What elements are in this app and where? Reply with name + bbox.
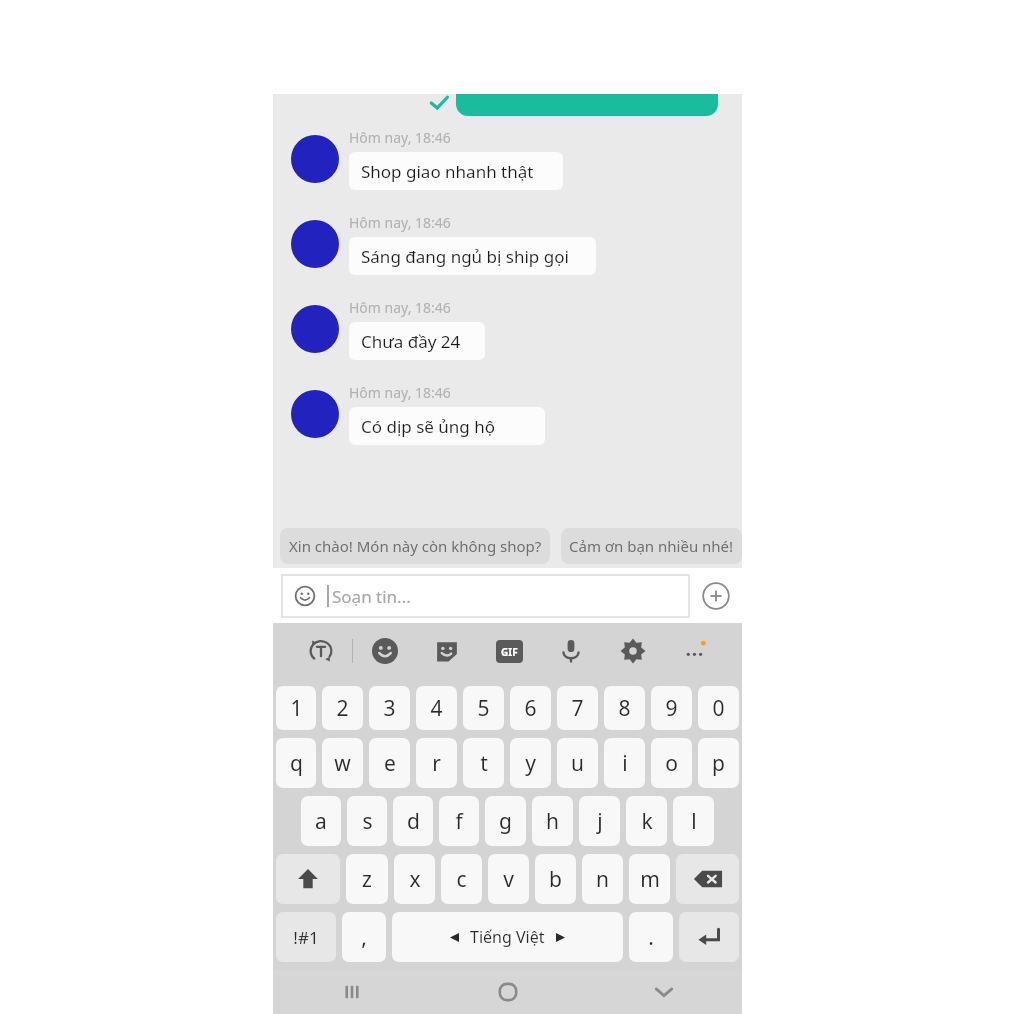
button[interactable]: g [485,796,526,846]
button[interactable]: Emoji [282,575,689,617]
button[interactable]: o [651,738,692,788]
button[interactable]: Voice input [540,623,602,679]
button[interactable]: c [441,854,482,904]
button[interactable]: 7 [557,686,598,730]
staticText: Xin chào! Món này còn không shop? [289,536,542,556]
button[interactable]: 4 [416,686,457,730]
staticText: s [362,807,373,836]
staticText: 4 [430,694,443,723]
staticText: a [315,807,327,836]
button[interactable]: Chưa đầy 24 giờ [349,322,485,360]
button[interactable]: Add attachment [699,579,733,613]
button[interactable]: 9 [651,686,692,730]
staticText: Hôm nay, 18:46 [349,213,451,232]
staticText: , [361,923,367,952]
staticText: q [290,749,303,778]
button[interactable]: 5 [463,686,504,730]
button[interactable]: Translate [289,623,352,679]
staticText: p [712,749,725,778]
staticText: t [480,749,488,778]
button[interactable]: Hide keyboard [586,970,742,1014]
button[interactable]: Emoji [353,623,416,679]
staticText: o [665,749,678,778]
staticText: 9 [665,694,678,723]
staticText: Shop giao nhanh thật đấy [361,160,551,183]
button[interactable]: 0 [698,686,739,730]
staticText: z [362,865,372,894]
button[interactable]: 8 [604,686,645,730]
button[interactable]: GIF [478,623,540,679]
button[interactable]: f [439,796,479,846]
button[interactable]: Recents [273,970,430,1014]
staticText: f [455,807,463,836]
button[interactable]: t [463,738,504,788]
button[interactable] [456,94,718,116]
button[interactable] [291,305,339,353]
button[interactable]: . [629,912,673,962]
button[interactable]: !#1 [276,912,336,962]
button[interactable] [291,220,339,268]
button[interactable]: j [579,796,620,846]
button[interactable] [291,135,339,183]
button[interactable]: Keyboard settings [602,623,664,679]
button[interactable]: 6 [510,686,551,730]
button[interactable]: e [369,738,410,788]
staticText: h [546,807,559,836]
staticText: GIF [501,645,518,659]
staticText: 3 [383,694,396,723]
button[interactable]: 1 [276,686,316,730]
button[interactable]: k [626,796,667,846]
button[interactable]: n [582,854,623,904]
staticText: 5 [477,694,490,723]
button[interactable]: v [488,854,529,904]
button[interactable]: 3 [369,686,410,730]
staticText: r [432,749,441,778]
button[interactable]: Enter [679,912,739,962]
button[interactable]: s [347,796,387,846]
button[interactable]: p [698,738,739,788]
staticText: 6 [524,694,537,723]
button[interactable]: a [301,796,341,846]
button[interactable]: Emoji [292,583,318,609]
button[interactable]: z [346,854,388,904]
button[interactable]: Cảm ơn bạn nhiều nhé! [561,528,742,564]
staticText: e [384,749,396,778]
button[interactable]: Shift [276,854,340,904]
staticText: g [499,807,512,836]
button[interactable]: Tiếng Việt [392,912,623,962]
button[interactable]: m [629,854,670,904]
button[interactable]: l [673,796,714,846]
button[interactable] [291,390,339,438]
staticText: . [648,923,654,952]
staticText: !#1 [293,926,319,949]
button[interactable]: Shop giao nhanh thật đấy [349,152,563,190]
button[interactable]: Sáng đang ngủ bị ship gọi dậy [349,237,596,275]
button[interactable]: i [604,738,645,788]
button[interactable]: Home [430,970,586,1014]
button[interactable]: b [535,854,576,904]
button[interactable]: y [510,738,551,788]
staticText: Hôm nay, 18:46 [349,383,451,402]
button[interactable]: Backspace [676,854,739,904]
button[interactable]: r [416,738,457,788]
staticText: Soạn tin... [332,585,411,608]
button[interactable]: Xin chào! Món này còn không shop? [280,528,550,564]
button[interactable]: d [393,796,433,846]
button[interactable]: Stickers [416,623,478,679]
button[interactable]: h [532,796,573,846]
button[interactable]: u [557,738,598,788]
button[interactable]: 2 [322,686,363,730]
button[interactable]: , [342,912,386,962]
staticText: 2 [336,694,349,723]
button[interactable]: q [276,738,316,788]
staticText: v [503,865,514,894]
staticText: 1 [290,694,303,723]
staticText: Sáng đang ngủ bị ship gọi dậy [361,245,584,268]
button[interactable]: x [394,854,435,904]
staticText: u [571,749,584,778]
button[interactable]: More options [664,623,726,679]
staticText: i [622,749,628,778]
button[interactable]: w [322,738,363,788]
staticText: Có dịp sẽ ủng hộ thêm [361,415,533,438]
button[interactable]: Có dịp sẽ ủng hộ thêm [349,407,545,445]
